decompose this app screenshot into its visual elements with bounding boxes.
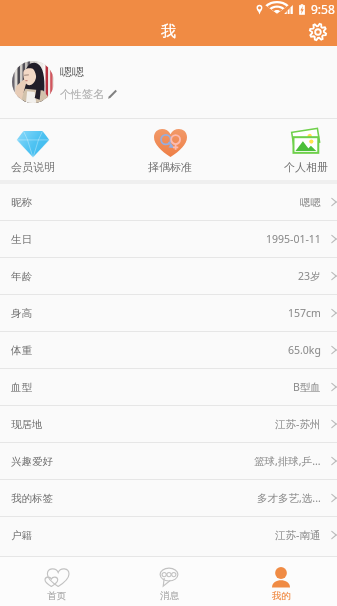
button[interactable]: 我的标签 (0, 480, 337, 516)
staticText: 我的标签 (11, 492, 53, 505)
staticText: 兴趣爱好 (11, 455, 53, 468)
staticText: 65.0kg (288, 343, 321, 357)
staticText: 生日 (11, 233, 32, 246)
button[interactable]: Settings (306, 20, 330, 44)
button[interactable]: 兴趣爱好 (0, 443, 337, 479)
staticText: 户籍 (11, 529, 32, 542)
button[interactable]: 身高 (0, 295, 337, 331)
staticText: 嗯嗯 (60, 64, 84, 79)
button[interactable]: 个人相册 (284, 119, 328, 180)
staticText: 个人相册 (284, 160, 328, 174)
staticText: 篮球,排球,乒... (254, 454, 321, 468)
staticText: 择偶标准 (148, 160, 192, 174)
staticText: 首页 (47, 590, 66, 602)
staticText: 现居地 (11, 418, 43, 431)
staticText: 1995-01-11 (266, 232, 321, 246)
button[interactable]: 户籍 (0, 517, 337, 553)
staticText: 江苏-苏州 (275, 417, 321, 431)
button[interactable]: 择偶标准 (148, 119, 192, 180)
staticText: 昵称 (11, 196, 32, 209)
button[interactable]: 昵称 (0, 184, 337, 220)
button[interactable]: 我的 (225, 557, 337, 606)
staticText: 9:58 (311, 1, 335, 17)
staticText: 嗯嗯 (300, 196, 321, 209)
staticText: 江苏-南通 (275, 528, 321, 542)
button[interactable]: 会员说明 (11, 119, 55, 180)
staticText: 身高 (11, 307, 32, 320)
button[interactable]: 血型 (0, 369, 337, 405)
button[interactable]: 消息 (113, 557, 225, 606)
staticText: 我的 (272, 590, 291, 602)
staticText: 个性签名 (60, 87, 104, 101)
button[interactable]: 年龄 (0, 258, 337, 294)
staticText: 血型 (11, 381, 32, 394)
button[interactable]: 首页 (0, 557, 113, 606)
button[interactable]: 生日 (0, 221, 337, 257)
staticText: 会员说明 (11, 160, 55, 174)
button[interactable]: 体重 (0, 332, 337, 368)
staticText: 多才多艺,选... (257, 491, 321, 505)
staticText: 我 (161, 22, 176, 41)
staticText: 23岁 (298, 269, 321, 283)
staticText: 157cm (288, 306, 321, 320)
staticText: 消息 (160, 590, 179, 602)
button[interactable]: 嗯嗯 (0, 46, 337, 118)
button[interactable]: 现居地 (0, 406, 337, 442)
staticText: 体重 (11, 344, 32, 357)
staticText: B型血 (293, 380, 321, 394)
staticText: 年龄 (11, 270, 32, 283)
